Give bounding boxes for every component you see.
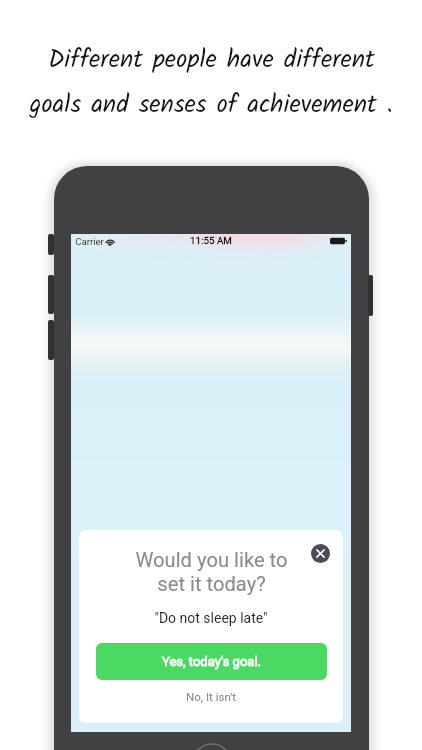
staticText: set it today? xyxy=(157,572,266,596)
staticText: Yes, today's goal. xyxy=(162,654,261,669)
staticText: goals and senses of achievement . xyxy=(29,85,393,125)
staticText: "Do not sleep late" xyxy=(154,610,268,626)
button[interactable]: No, It isn't xyxy=(186,690,236,703)
staticText: 11:55 AM xyxy=(190,235,232,246)
button[interactable]: Yes, today's goal. xyxy=(96,643,327,680)
staticText: Carrier xyxy=(75,236,104,247)
staticText: Different people have different xyxy=(48,40,375,80)
staticText: Would you like to xyxy=(135,548,288,572)
button[interactable]: Close xyxy=(311,544,330,563)
